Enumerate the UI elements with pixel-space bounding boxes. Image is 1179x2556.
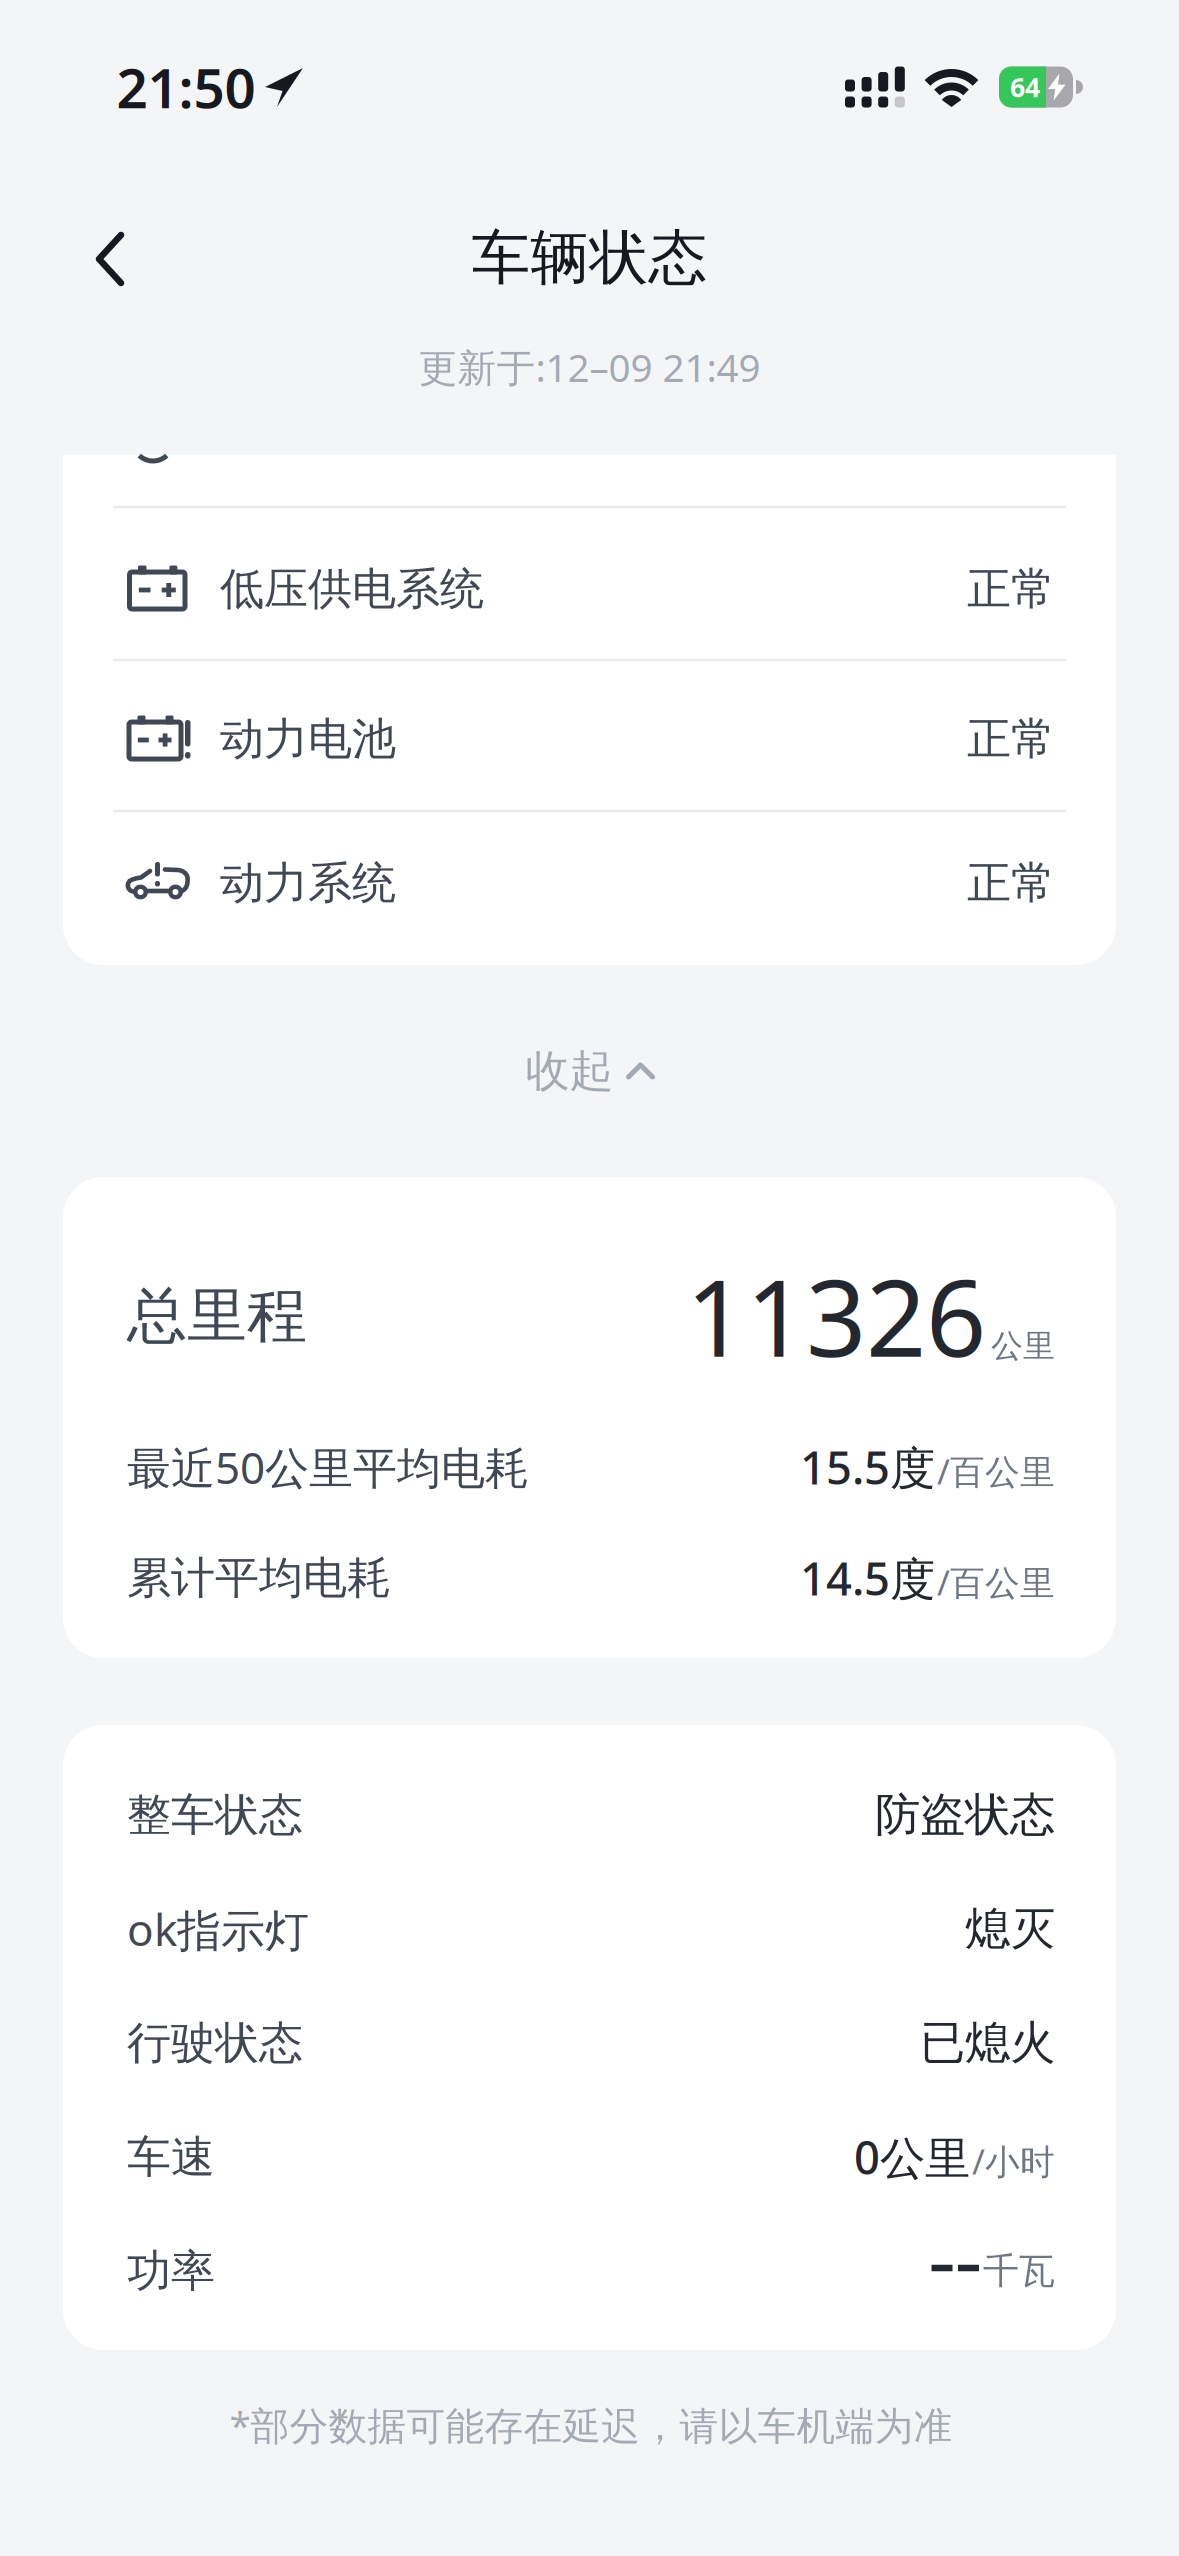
staticText: /百公里 (937, 1448, 1055, 1494)
staticText: 累计平均电耗 (127, 1551, 391, 1605)
staticText: 整车状态 (127, 1788, 303, 1842)
staticText: 总里程 (127, 1279, 307, 1353)
staticText: 11326 (686, 1246, 986, 1386)
staticText: *部分数据可能存在延迟，请以车机端为准 (229, 2399, 952, 2451)
staticText: 动力电池 (220, 712, 396, 766)
staticText: 低压供电系统 (220, 562, 484, 616)
button[interactable]: Back (97, 233, 124, 285)
staticText: 最近50公里平均电耗 (127, 1438, 529, 1496)
staticText: 千瓦 (983, 2249, 1055, 2293)
staticText: 收起 (525, 1044, 613, 1098)
staticText: 功率 (127, 2244, 215, 2298)
staticText: 车辆状态 (471, 222, 707, 294)
staticText: 熄灭 (965, 1901, 1055, 1957)
staticText: 车速 (127, 2130, 215, 2184)
staticText: /小时 (972, 2138, 1055, 2184)
staticText: ok指示灯 (127, 1900, 309, 1958)
staticText: 64 (1010, 69, 1040, 105)
staticText: 更新于:12–09 21:49 (418, 341, 760, 393)
staticText: 21:50 (116, 51, 255, 123)
staticText: 15.5度 (800, 1437, 935, 1497)
staticText: 正常 (967, 562, 1055, 616)
staticText: 动力系统 (220, 856, 396, 910)
staticText: 14.5度 (800, 1548, 935, 1608)
staticText: 公里 (991, 1327, 1055, 1366)
staticText: 正常 (967, 712, 1055, 766)
button[interactable]: 收起 (525, 1044, 653, 1098)
staticText: 已熄火 (920, 2015, 1055, 2071)
staticText: 正常 (967, 856, 1055, 910)
staticText: 防盗状态 (875, 1787, 1055, 1843)
staticText: /百公里 (937, 1559, 1055, 1605)
staticText: 行驶状态 (127, 2016, 303, 2070)
staticText: 0公里 (854, 2127, 970, 2187)
